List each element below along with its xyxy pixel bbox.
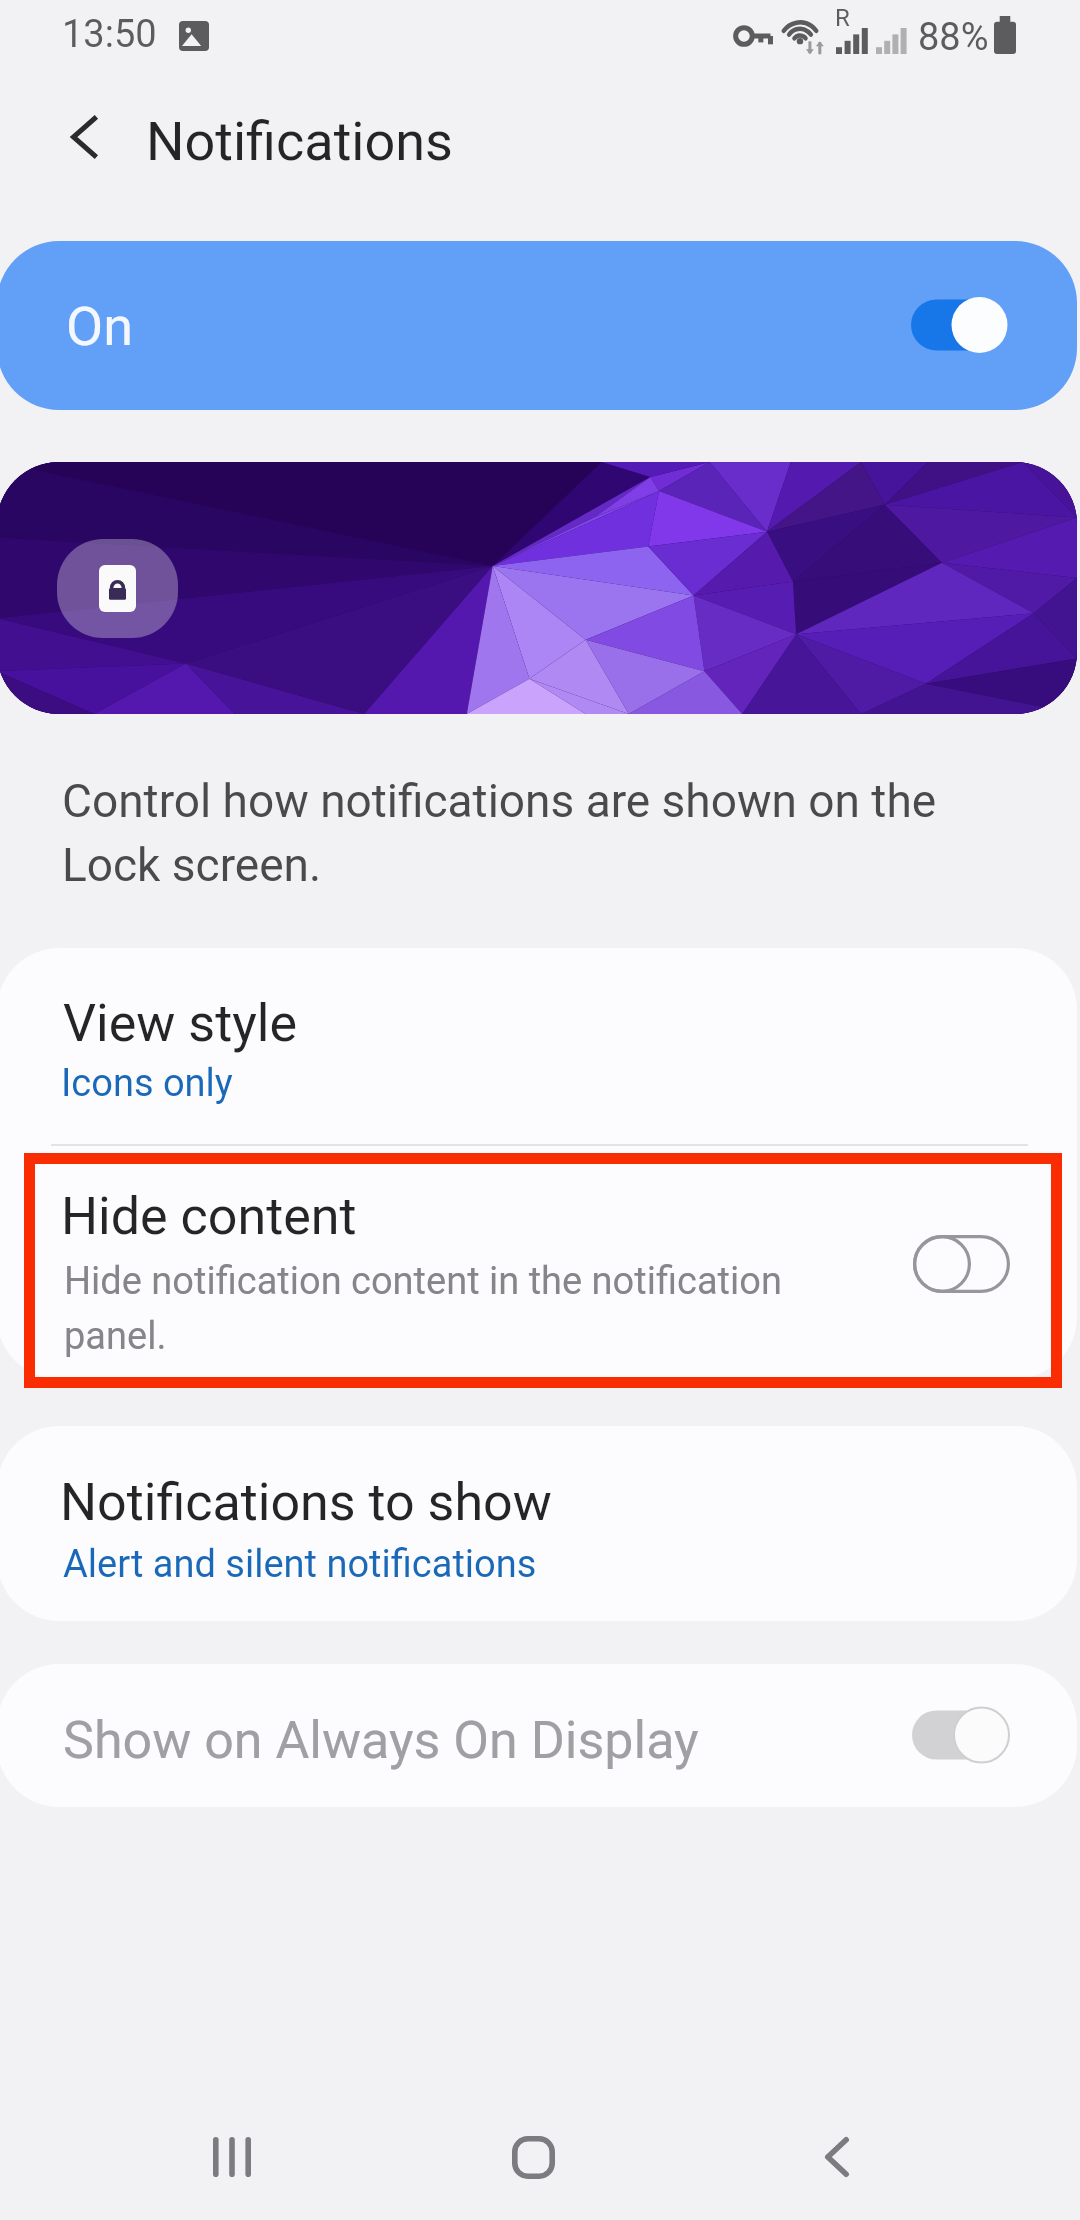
staticText: R bbox=[835, 4, 850, 32]
button[interactable]: Back bbox=[42, 99, 126, 175]
staticText: Alert and silent notifications bbox=[63, 1542, 537, 1587]
button[interactable]: Notifications to show bbox=[0, 1426, 1077, 1621]
button[interactable]: Show on Always On Display bbox=[0, 1664, 1077, 1807]
button[interactable]: Back bbox=[756, 2098, 917, 2216]
button[interactable]: Home bbox=[453, 2098, 614, 2216]
staticText: Hide content bbox=[61, 1186, 357, 1247]
button[interactable] bbox=[0, 462, 1077, 714]
staticText: Icons only bbox=[61, 1061, 233, 1106]
button[interactable]: Recent apps bbox=[151, 2098, 312, 2216]
staticText: On bbox=[66, 295, 133, 358]
staticText: 13:50 bbox=[62, 12, 157, 57]
staticText: Show on Always On Display bbox=[63, 1710, 699, 1771]
button[interactable] bbox=[0, 1148, 1077, 1379]
staticText: 88% bbox=[918, 15, 989, 60]
staticText: Notifications to show bbox=[60, 1472, 552, 1533]
staticText: Control how notifications are shown on t… bbox=[62, 774, 937, 893]
button[interactable]: On bbox=[0, 241, 1077, 410]
button[interactable] bbox=[0, 948, 1077, 1148]
staticText: Notifications bbox=[146, 110, 453, 173]
staticText: Hide notification content in the notific… bbox=[64, 1259, 782, 1358]
staticText: View style bbox=[63, 993, 297, 1054]
